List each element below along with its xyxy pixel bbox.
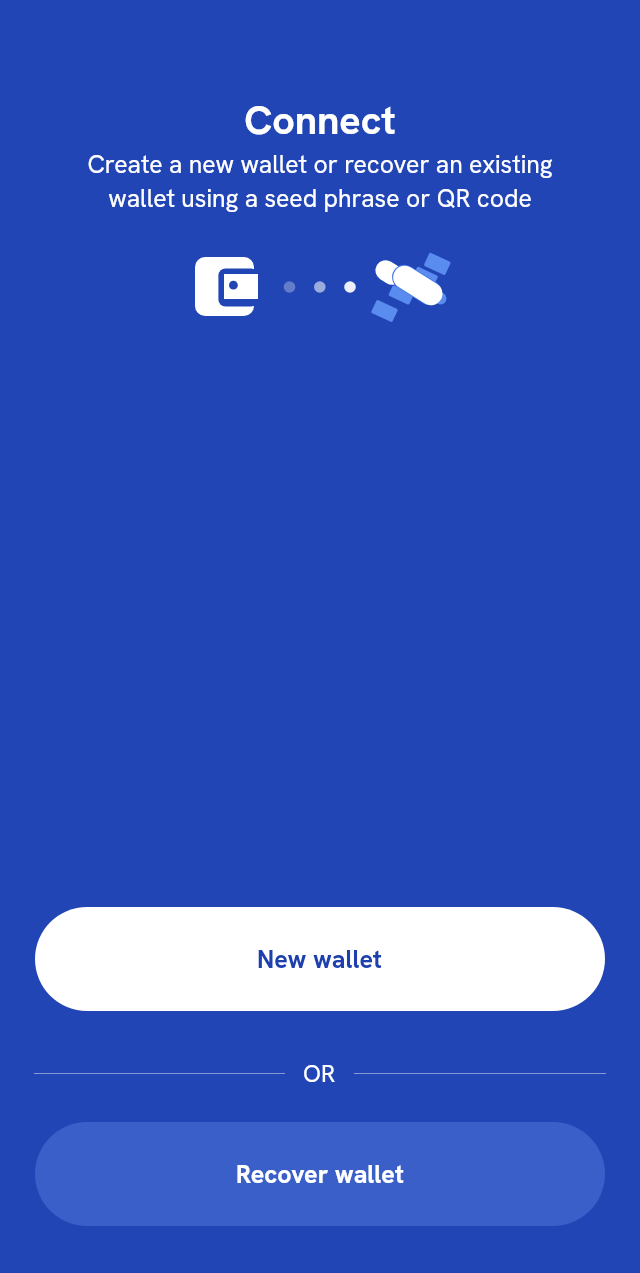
staticText: New wallet xyxy=(257,943,383,976)
other: Wallet connecting to the network xyxy=(0,252,640,332)
staticText: OR xyxy=(303,1058,336,1089)
button[interactable]: New wallet xyxy=(35,907,605,1011)
button[interactable]: Recover wallet xyxy=(35,1122,605,1226)
staticText: Recover wallet xyxy=(236,1158,404,1191)
staticText: Connect xyxy=(0,94,640,145)
staticText: Create a new wallet or recover an existi… xyxy=(0,148,640,215)
